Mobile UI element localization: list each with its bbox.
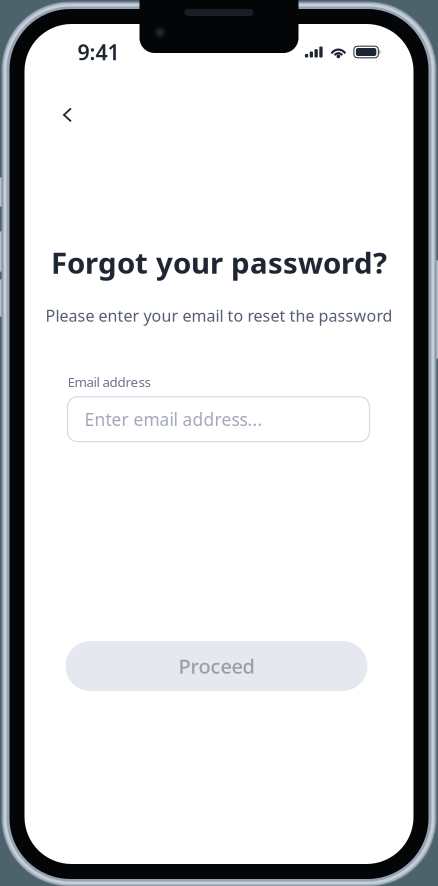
staticText: Enter email address... — [84, 408, 262, 431]
staticText: Forgot your password? — [51, 243, 387, 282]
staticText: Proceed — [178, 653, 254, 679]
button[interactable]: Proceed — [65, 641, 367, 691]
staticText: Please enter your email to reset the pas… — [45, 305, 392, 326]
button[interactable]: Enter email address... — [67, 397, 369, 442]
staticText: Email address — [67, 373, 150, 391]
button[interactable]: Back — [45, 93, 89, 137]
staticText: 9:41 — [77, 38, 119, 66]
